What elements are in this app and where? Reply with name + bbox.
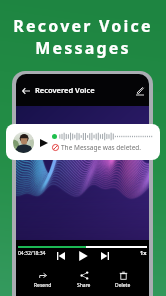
staticText: The Message was deleted. [61,143,142,152]
button[interactable]: Delete [108,270,138,290]
button[interactable]: Next [98,249,112,263]
button[interactable]: Share [70,270,98,290]
staticText: Recover Voice [13,15,153,37]
button[interactable]: Back [19,84,32,97]
staticText: Messages [35,37,131,59]
staticText: Recovered Voice [35,85,95,95]
staticText: Delete [115,282,131,289]
button[interactable]: Play message [38,137,49,148]
button[interactable]: Edit [133,84,146,97]
staticText: 1x [140,249,147,256]
button[interactable]: Resend [27,270,59,290]
button[interactable]: Previous [54,249,68,263]
staticText: 04:32/18:34 [18,250,46,257]
staticText: Resend [34,282,52,289]
staticText: Share [77,282,91,289]
button[interactable]: Play message [6,124,160,160]
button[interactable]: Play [76,249,90,263]
